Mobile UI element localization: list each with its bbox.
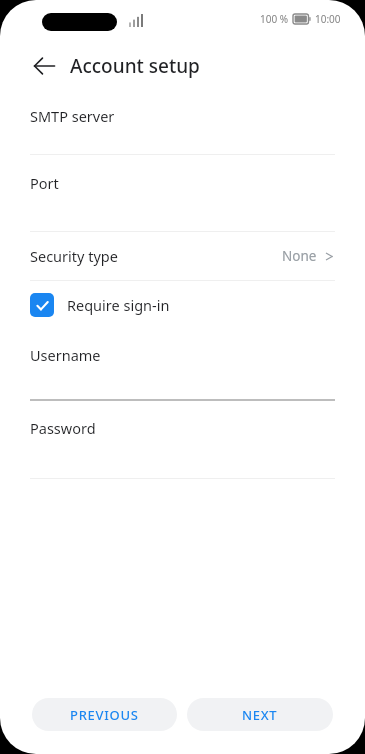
button[interactable]: NEXT — [187, 698, 333, 731]
staticText: Require sign-in — [67, 295, 170, 315]
button[interactable]: Password — [0, 401, 365, 479]
staticText: Account setup — [70, 53, 200, 79]
staticText: SMTP server — [30, 106, 115, 126]
staticText: Password — [30, 418, 96, 438]
button[interactable]: Username — [0, 328, 365, 401]
staticText: 10:00 — [315, 12, 341, 26]
staticText: NEXT — [242, 706, 278, 724]
staticText: None — [282, 247, 317, 265]
button[interactable]: Security type — [0, 232, 365, 281]
button[interactable]: Back — [24, 46, 64, 86]
staticText: PREVIOUS — [70, 706, 139, 724]
button[interactable]: Require sign-in — [0, 281, 365, 328]
staticText: Port — [30, 173, 59, 193]
staticText: 100 % — [260, 12, 289, 26]
staticText: Username — [30, 345, 101, 365]
staticText: Security type — [30, 246, 118, 266]
button[interactable]: Port — [0, 155, 365, 232]
button[interactable]: PREVIOUS — [32, 698, 177, 731]
button[interactable]: SMTP server — [0, 88, 365, 155]
